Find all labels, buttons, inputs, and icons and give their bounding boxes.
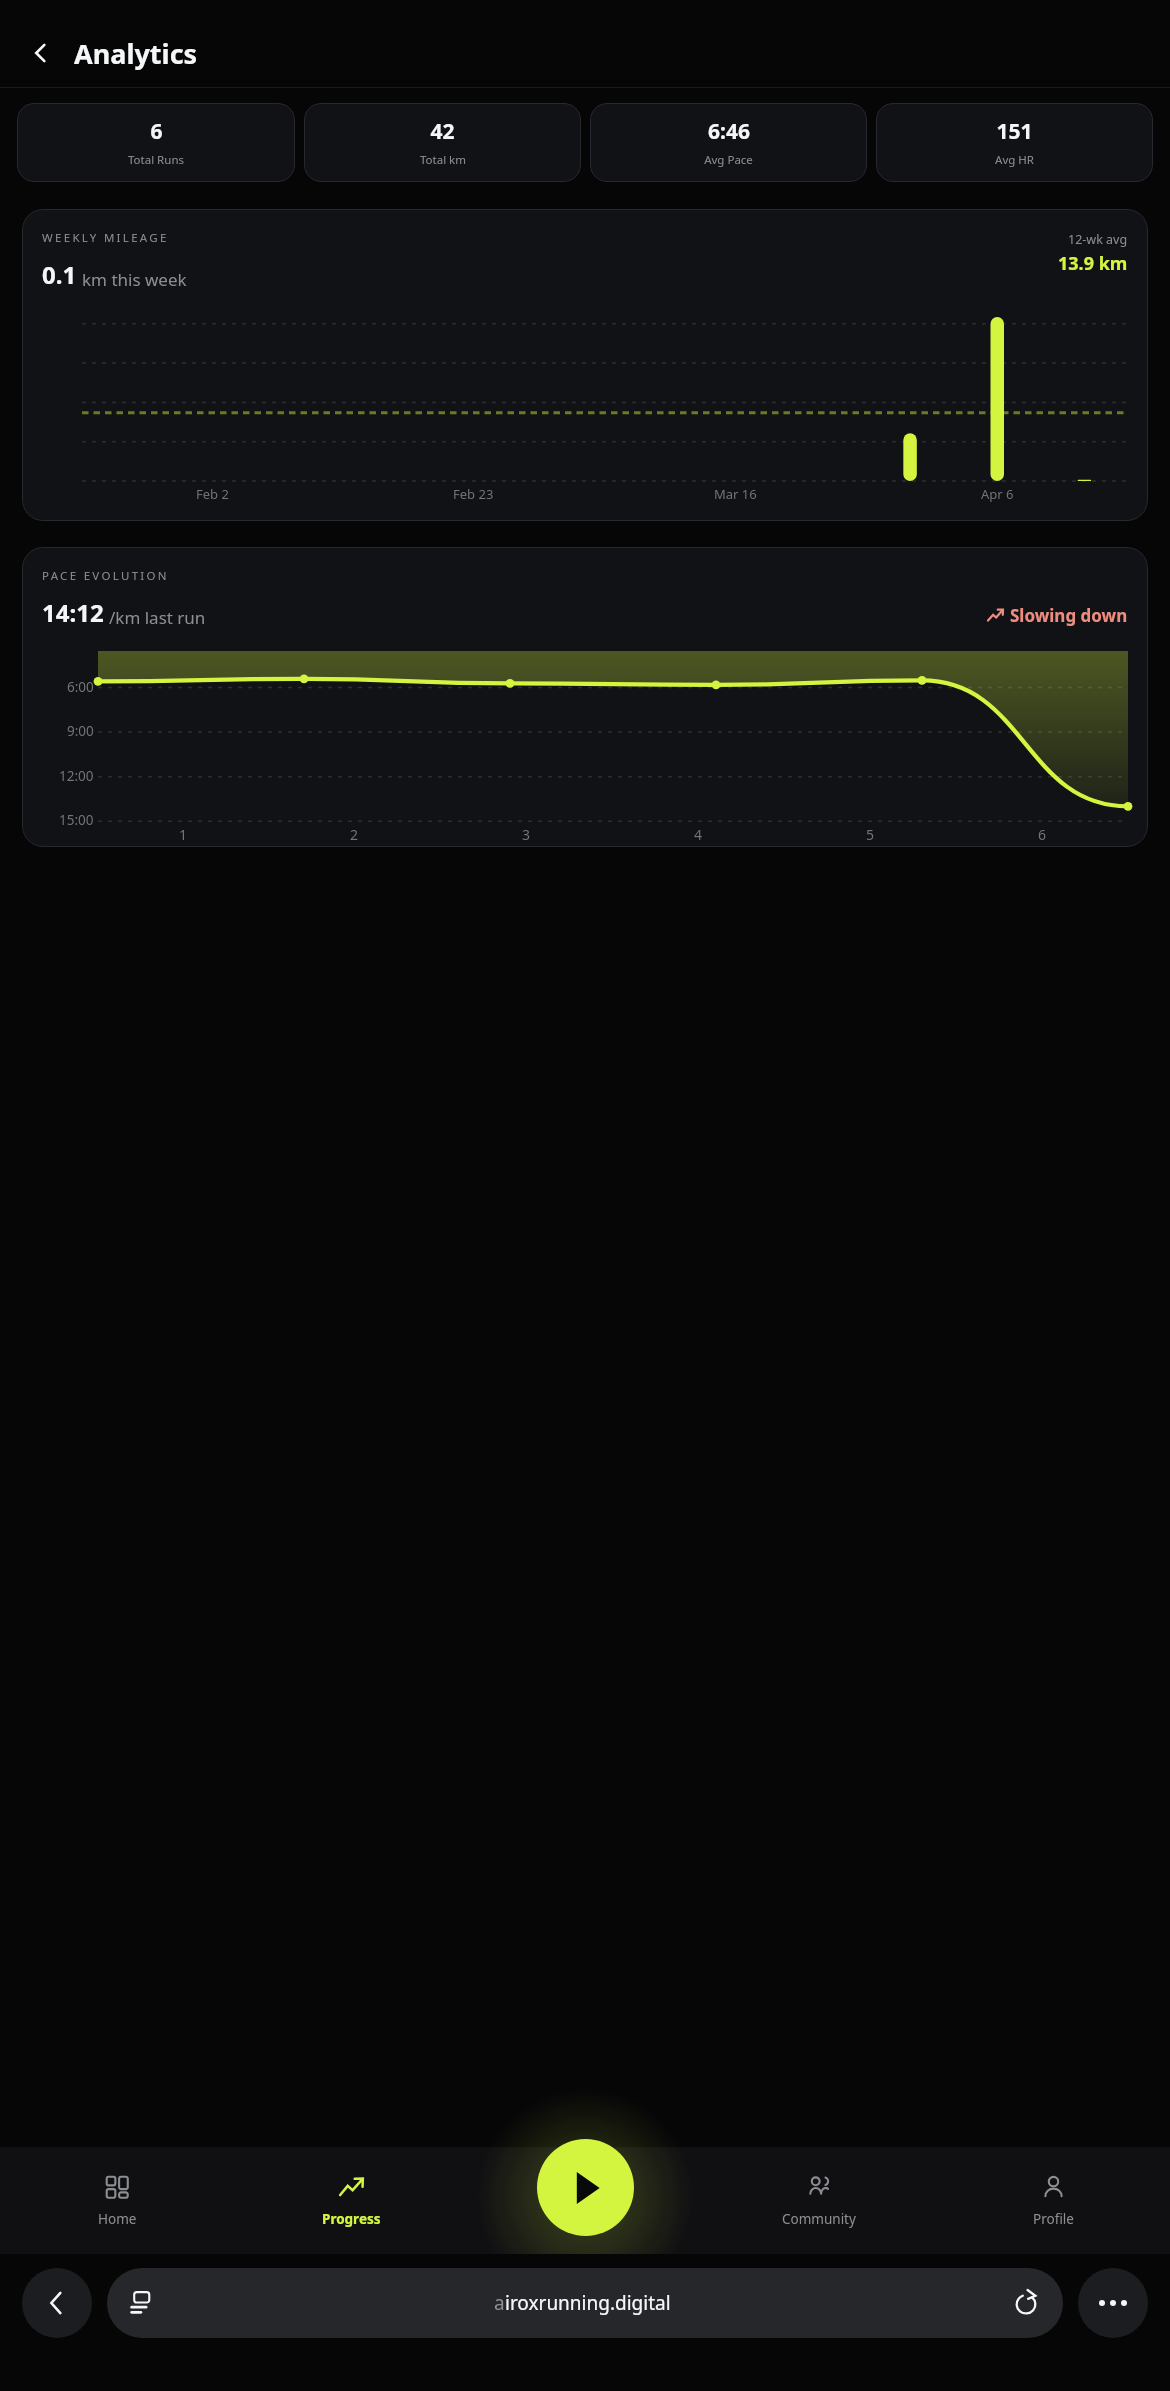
- staticText: 1: [179, 825, 188, 844]
- staticText: Total Runs: [128, 152, 184, 168]
- button[interactable]: 6: [17, 103, 295, 182]
- button[interactable]: Community: [702, 2147, 936, 2254]
- staticText: Apr 6: [981, 485, 1014, 503]
- staticText: 6: [150, 117, 163, 146]
- staticText: PACE EVOLUTION: [42, 568, 169, 584]
- button[interactable]: Reload: [1011, 2288, 1041, 2318]
- staticText: /km last run: [109, 606, 206, 629]
- staticText: Mar 16: [714, 485, 757, 503]
- staticText: 3: [522, 825, 531, 844]
- staticText: Community: [782, 2210, 856, 2228]
- staticText: 42: [430, 117, 455, 146]
- staticText: 5: [866, 825, 875, 844]
- staticText: Avg HR: [995, 152, 1034, 168]
- button[interactable]: Start run: [537, 2139, 634, 2236]
- staticText: Feb 2: [196, 485, 229, 503]
- staticText: a: [494, 2290, 505, 2316]
- staticText: 0.1: [42, 258, 77, 291]
- button[interactable]: Profile: [936, 2147, 1170, 2254]
- button[interactable]: More options: [1078, 2268, 1148, 2338]
- staticText: WEEKLY MILEAGE: [42, 230, 169, 246]
- staticText: Slowing down: [1010, 604, 1128, 627]
- button[interactable]: a: [107, 2268, 1063, 2338]
- staticText: 9:00: [67, 722, 94, 740]
- staticText: Progress: [322, 2210, 381, 2228]
- button[interactable]: Home: [0, 2147, 234, 2254]
- staticText: 12:00: [59, 767, 94, 785]
- button[interactable]: 42: [304, 103, 581, 182]
- button[interactable]: Back: [22, 2268, 92, 2338]
- staticText: Avg Pace: [704, 152, 753, 168]
- staticText: 12-wk avg: [1068, 231, 1128, 248]
- staticText: 14:12: [42, 596, 104, 629]
- staticText: km this week: [82, 268, 187, 291]
- button[interactable]: 6:46: [590, 103, 867, 182]
- staticText: 151: [996, 117, 1033, 146]
- staticText: Profile: [1033, 2210, 1074, 2228]
- staticText: Analytics: [74, 35, 198, 72]
- staticText: 6: [1038, 825, 1047, 844]
- button[interactable]: 151: [876, 103, 1153, 182]
- staticText: Feb 23: [453, 485, 494, 503]
- button[interactable]: WEEKLY MILEAGE: [22, 209, 1148, 521]
- button[interactable]: Back: [20, 32, 62, 74]
- staticText: iroxrunning.digital: [505, 2290, 671, 2316]
- button[interactable]: PACE EVOLUTION: [22, 547, 1148, 847]
- staticText: 6:00: [67, 678, 94, 696]
- staticText: Total km: [420, 152, 466, 168]
- staticText: 4: [694, 825, 703, 844]
- staticText: Home: [98, 2210, 137, 2228]
- button[interactable]: Progress: [234, 2147, 468, 2254]
- staticText: 2: [350, 825, 359, 844]
- staticText: 15:00: [59, 811, 94, 829]
- staticText: 6:46: [708, 117, 750, 146]
- staticText: 13.9 km: [1058, 251, 1128, 276]
